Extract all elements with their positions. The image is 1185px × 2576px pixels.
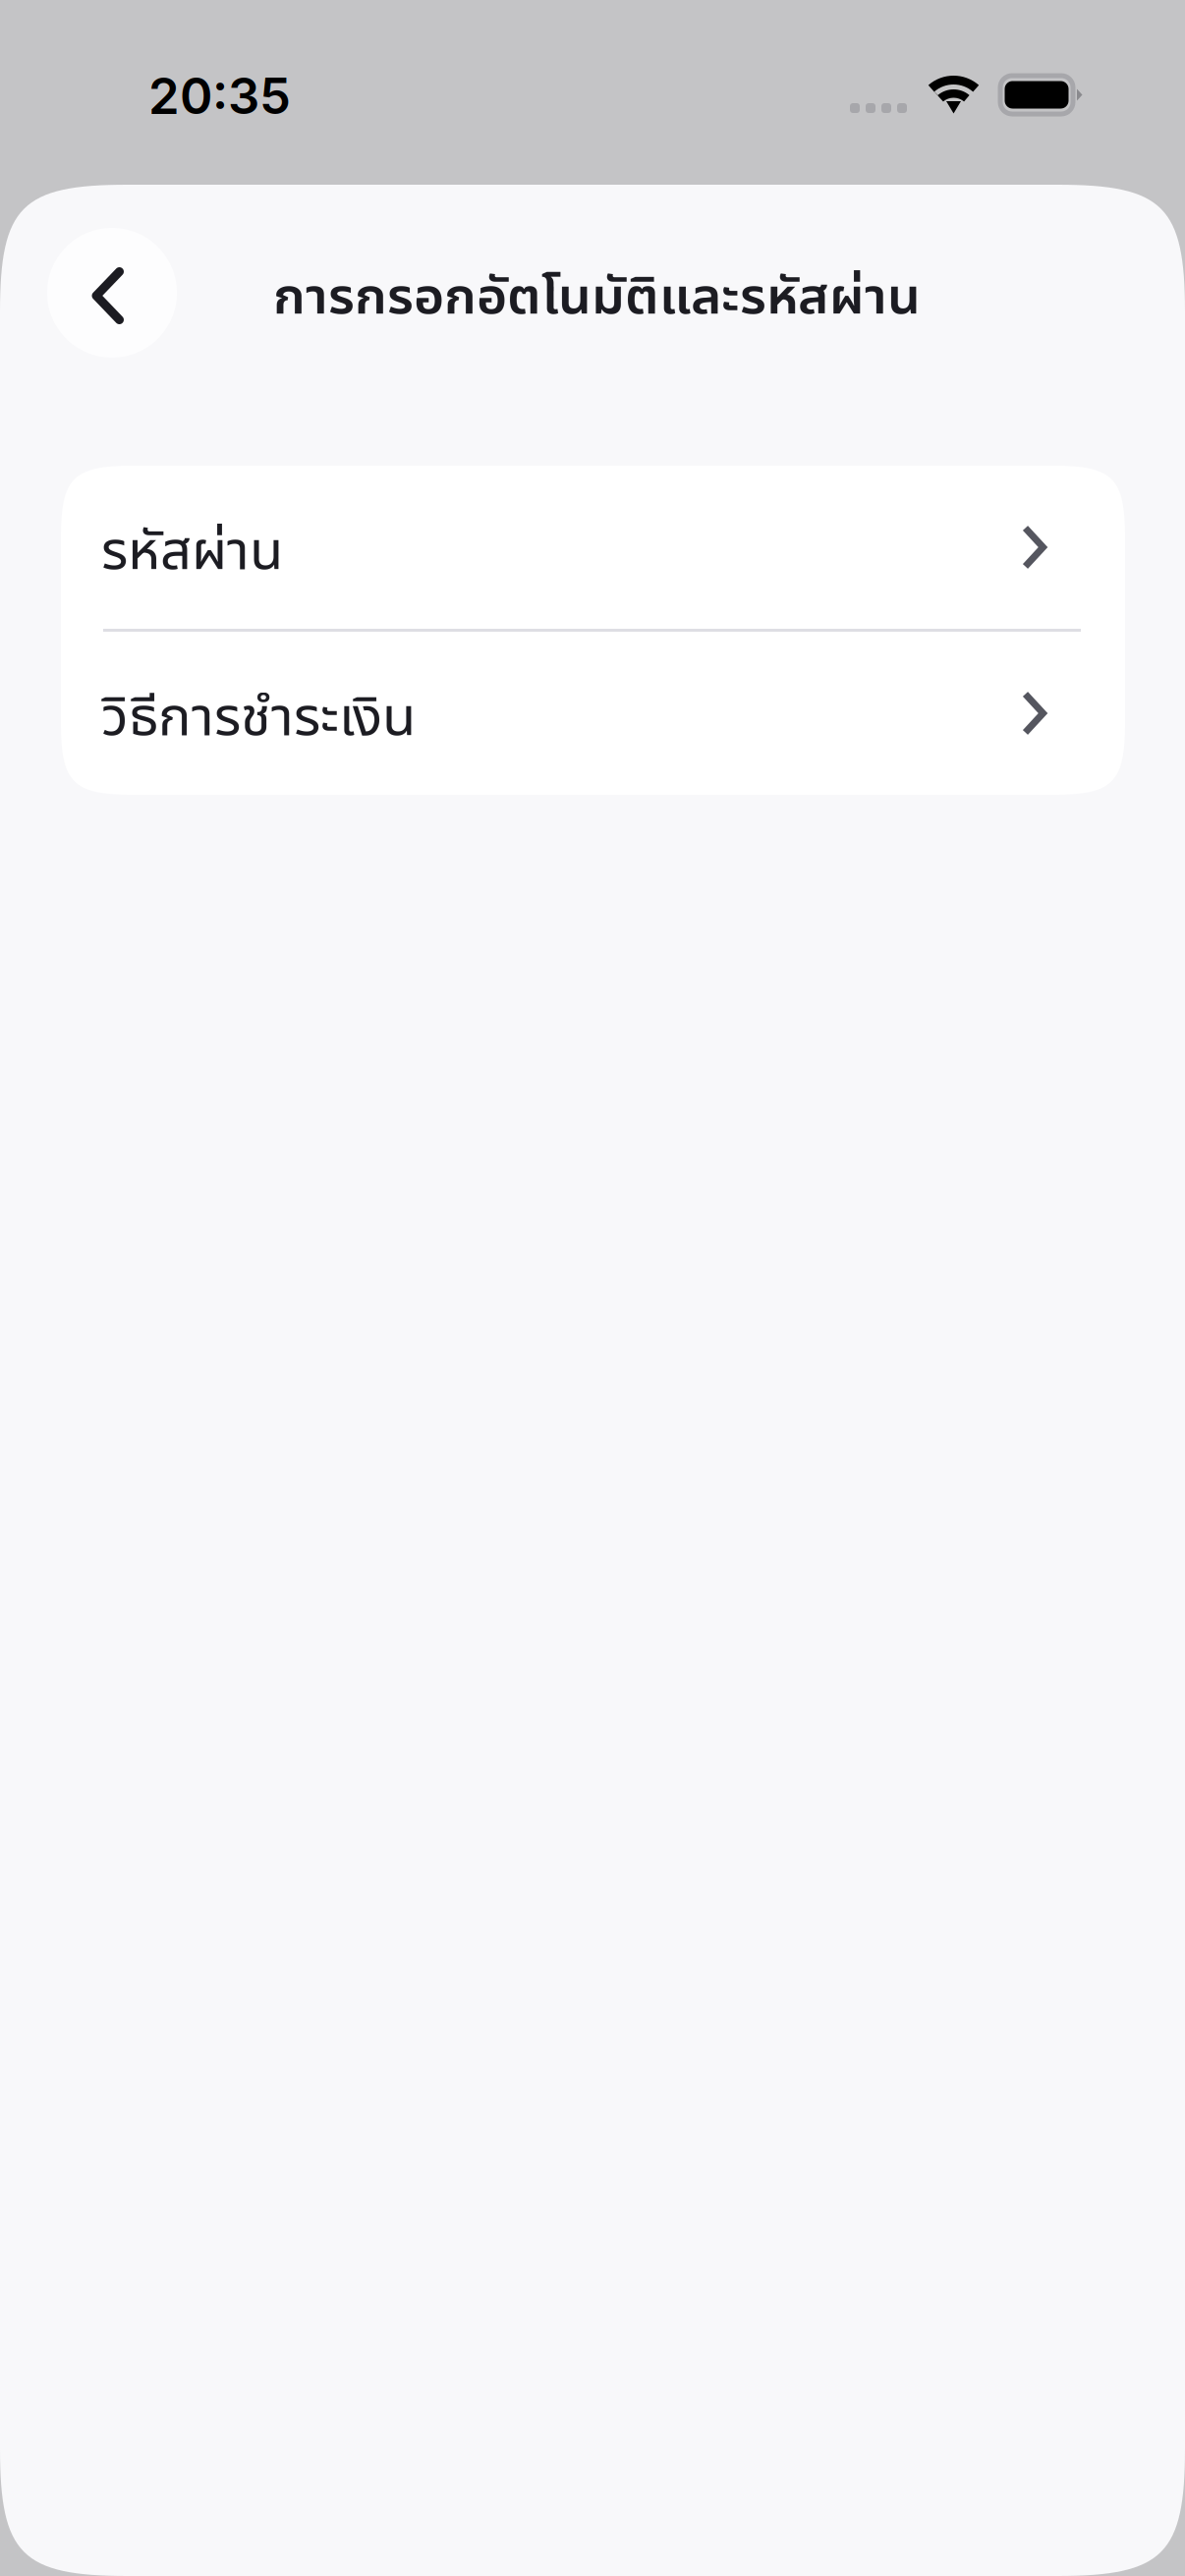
button[interactable]: Back	[47, 228, 177, 358]
staticText: การกรอกอัตโนมัติและรหัสผ่าน	[273, 257, 921, 328]
button[interactable]: วิธีการชำระเงิน	[61, 632, 1125, 795]
staticText: รหัสผ่าน	[101, 510, 283, 585]
staticText: 20:35	[148, 66, 291, 126]
button[interactable]: รหัสผ่าน	[61, 466, 1125, 629]
staticText: วิธีการชำระเงิน	[101, 676, 416, 751]
